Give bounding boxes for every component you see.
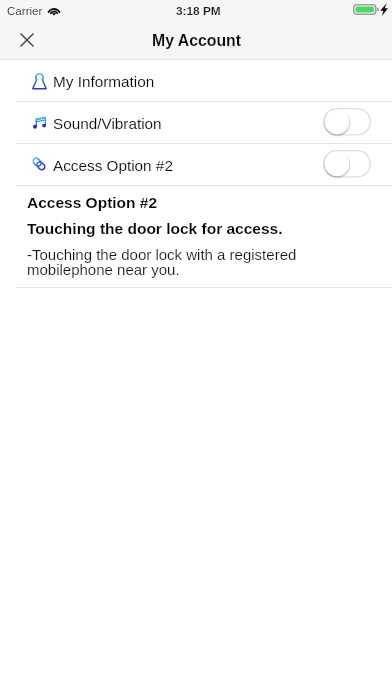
- staticText: Carrier: [7, 4, 43, 17]
- button[interactable]: Toggle: [323, 150, 371, 178]
- button[interactable]: Access Option #2: [0, 144, 392, 186]
- staticText: Sound/Vibration: [53, 115, 162, 132]
- staticText: My Account: [152, 32, 241, 50]
- button[interactable]: Toggle: [323, 108, 371, 136]
- button[interactable]: Sound/Vibration: [0, 102, 392, 144]
- button[interactable]: My Information: [0, 60, 392, 102]
- staticText: 3:18 PM: [176, 4, 221, 17]
- button[interactable]: Close: [0, 22, 54, 58]
- staticText: My Information: [53, 73, 155, 90]
- staticText: Access Option #2: [27, 194, 158, 211]
- staticText: Access Option #2: [53, 157, 173, 174]
- staticText: Touching the door lock for access.: [27, 220, 283, 237]
- staticText: -Touching the door lock with a registere…: [27, 246, 297, 279]
